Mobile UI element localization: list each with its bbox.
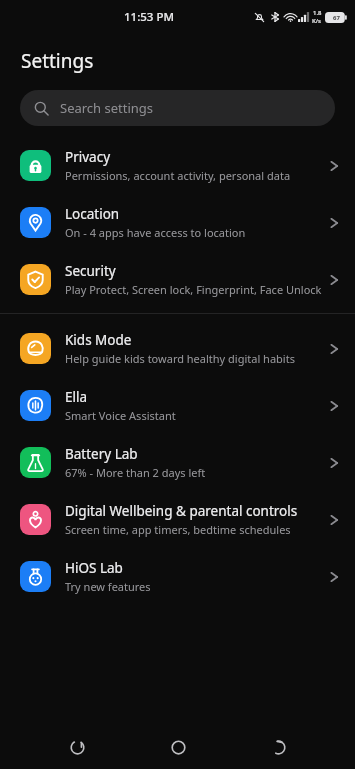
staticText: Help guide kids toward healthy digital h… [65,351,295,366]
staticText: Screen time, app timers, bedtime schedul… [65,522,291,537]
staticText: Search settings [60,99,154,117]
staticText: Play Protect, Screen lock, Fingerprint, … [65,282,322,297]
staticText: HiOS Lab [65,559,123,577]
staticText: 67% - More than 2 days left [65,465,206,480]
button[interactable]: Home [154,725,202,769]
staticText: Privacy [65,148,111,166]
staticText: Kids Mode [65,331,132,349]
button[interactable]: HiOS Lab [0,548,355,605]
button[interactable]: Recents [53,725,101,769]
staticText: 67 [333,14,340,22]
staticText: Ella [65,388,88,406]
staticText: Security [65,262,116,280]
staticText: Digital Wellbeing & parental controls [65,502,298,520]
staticText: Location [65,205,120,223]
staticText: 11:53 PM [124,9,175,25]
button[interactable]: Kids Mode [0,320,355,377]
staticText: Permissions, account activity, personal … [65,168,291,183]
staticText: Try new features [65,579,151,594]
button[interactable]: Search settings [20,90,335,126]
button[interactable]: Ella [0,377,355,434]
staticText: On - 4 apps have access to location [65,225,246,240]
button[interactable]: Digital Wellbeing & parental controls [0,491,355,548]
button[interactable]: Location [0,194,355,251]
staticText: Settings [21,48,94,74]
button[interactable]: Privacy [0,137,355,194]
button[interactable]: Back [254,725,302,769]
staticText: Smart Voice Assistant [65,408,176,423]
staticText: 1.8 [313,9,322,17]
button[interactable]: Battery Lab [0,434,355,491]
staticText: Battery Lab [65,445,138,463]
button[interactable]: Security [0,251,355,308]
staticText: K/s [312,17,322,25]
